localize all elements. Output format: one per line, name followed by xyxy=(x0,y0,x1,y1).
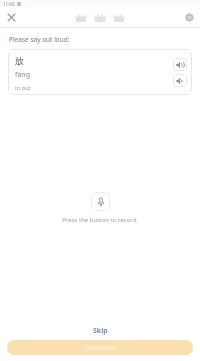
staticText: Press the button to record. xyxy=(62,216,138,224)
staticText: 放 xyxy=(15,55,24,66)
button[interactable]: Record xyxy=(91,192,110,211)
button[interactable]: Play slowly xyxy=(173,74,187,87)
button[interactable]: Skip xyxy=(83,322,118,340)
button[interactable]: Continue xyxy=(7,340,193,355)
button[interactable]: Close xyxy=(4,10,18,24)
staticText: to put xyxy=(15,84,31,91)
staticText: 11:42 xyxy=(3,1,15,7)
button[interactable]: Play audio xyxy=(173,58,187,71)
staticText: Skip xyxy=(93,326,108,336)
staticText: fàng xyxy=(15,70,30,80)
button[interactable]: Settings xyxy=(182,10,196,24)
button[interactable]: 放 xyxy=(8,49,192,95)
staticText: Continue xyxy=(84,343,116,353)
staticText: Please say out loud: xyxy=(9,35,70,44)
